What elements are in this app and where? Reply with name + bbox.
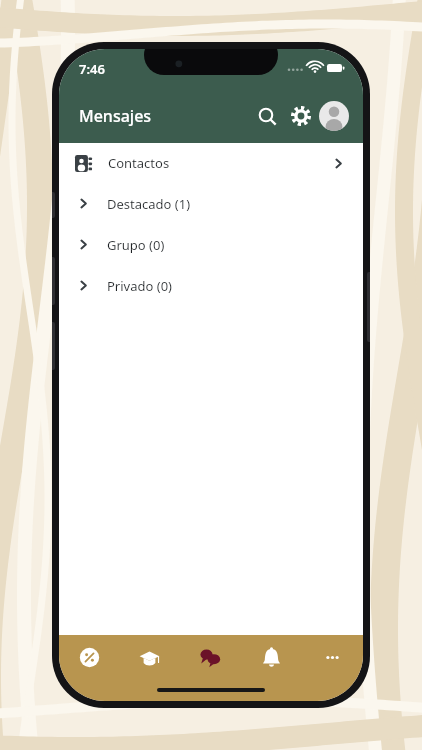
staticText: 7:46: [79, 60, 105, 78]
button[interactable]: Destacado (1): [59, 183, 363, 224]
staticText: Grupo (0): [107, 236, 165, 254]
staticText: Mensajes: [79, 105, 152, 127]
button[interactable]: Privado (0): [59, 265, 363, 306]
button[interactable]: Profile: [319, 101, 349, 131]
button[interactable]: Grupo (0): [59, 224, 363, 265]
button[interactable]: Messages: [180, 635, 241, 679]
button[interactable]: Dashboard: [59, 635, 119, 679]
button[interactable]: Courses: [119, 635, 180, 679]
button[interactable]: Search: [251, 100, 283, 132]
button[interactable]: More: [302, 635, 363, 679]
staticText: Destacado (1): [107, 195, 191, 213]
button[interactable]: Contactos: [59, 143, 363, 183]
staticText: Contactos: [108, 154, 170, 172]
button[interactable]: Notifications: [241, 635, 302, 679]
staticText: Privado (0): [107, 277, 172, 295]
button[interactable]: Settings: [285, 100, 317, 132]
